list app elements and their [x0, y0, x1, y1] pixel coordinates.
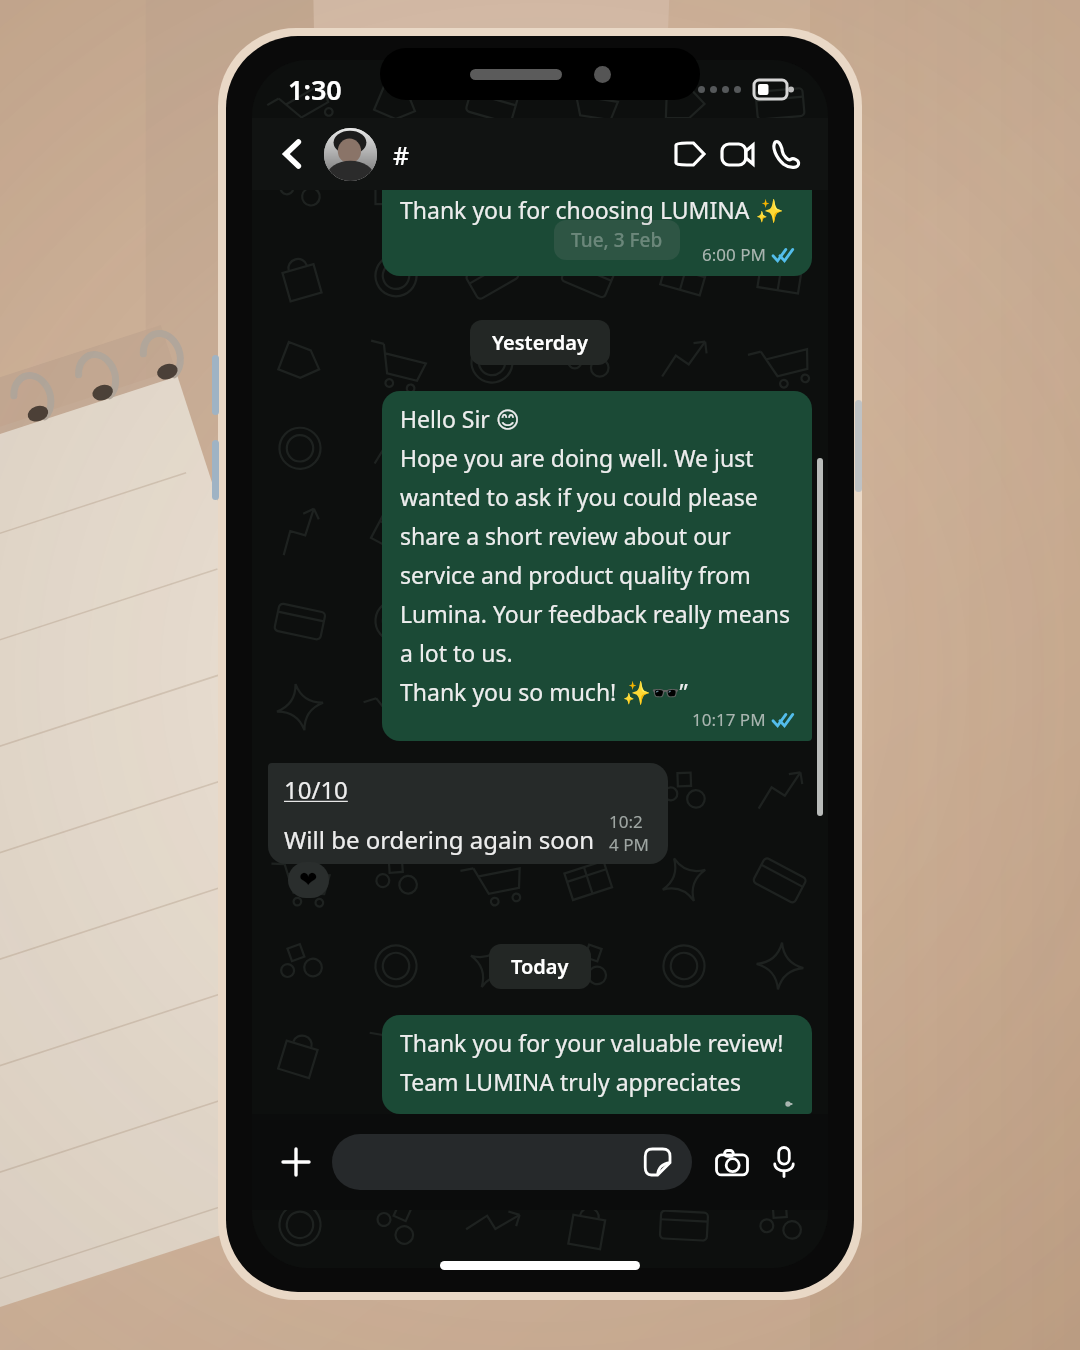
staticText: Today [511, 953, 569, 980]
staticText: Tue, 3 Feb [571, 227, 663, 253]
staticText: 1:30 [288, 71, 342, 108]
other: Stickers [640, 1145, 674, 1179]
button[interactable]: Attach [270, 1136, 322, 1188]
button[interactable]: Stickers [332, 1134, 692, 1190]
button[interactable]: 10/10 [268, 763, 668, 864]
staticText: 10/10 [284, 773, 348, 806]
button[interactable]: Video call [714, 130, 762, 178]
button[interactable]: ❤️ [288, 862, 329, 898]
staticText: 6:00 PM [702, 243, 766, 266]
button[interactable]: Today [489, 944, 591, 989]
button[interactable]: # [324, 128, 666, 181]
staticText: # [393, 138, 410, 172]
staticText: ❤️ [299, 867, 318, 893]
staticText: Hello Sir 😊 Hope you are doing well. We … [400, 403, 796, 708]
button[interactable]: Back [270, 131, 316, 177]
button[interactable]: Yesterday [470, 320, 610, 365]
staticText: 10:17 PM [692, 708, 766, 731]
staticText: 10:24 PM [609, 810, 652, 856]
staticText: Thank you for your valuable review! Team… [400, 1027, 796, 1104]
button[interactable]: Thank you for choosing LUMINA ✨ [382, 190, 812, 276]
button[interactable]: Label [666, 130, 714, 178]
button[interactable]: Hello Sir 😊 Hope you are doing well. We … [382, 391, 812, 741]
button[interactable]: Thank you for your valuable review! Team… [382, 1015, 812, 1114]
button[interactable]: Camera [706, 1136, 758, 1188]
staticText: Yesterday [492, 329, 588, 356]
button[interactable]: Voice message [758, 1136, 810, 1188]
button[interactable]: Voice call [762, 130, 810, 178]
staticText: Thank you for choosing LUMINA ✨ [400, 194, 784, 225]
staticText: Will be ordering again soon [284, 823, 595, 856]
